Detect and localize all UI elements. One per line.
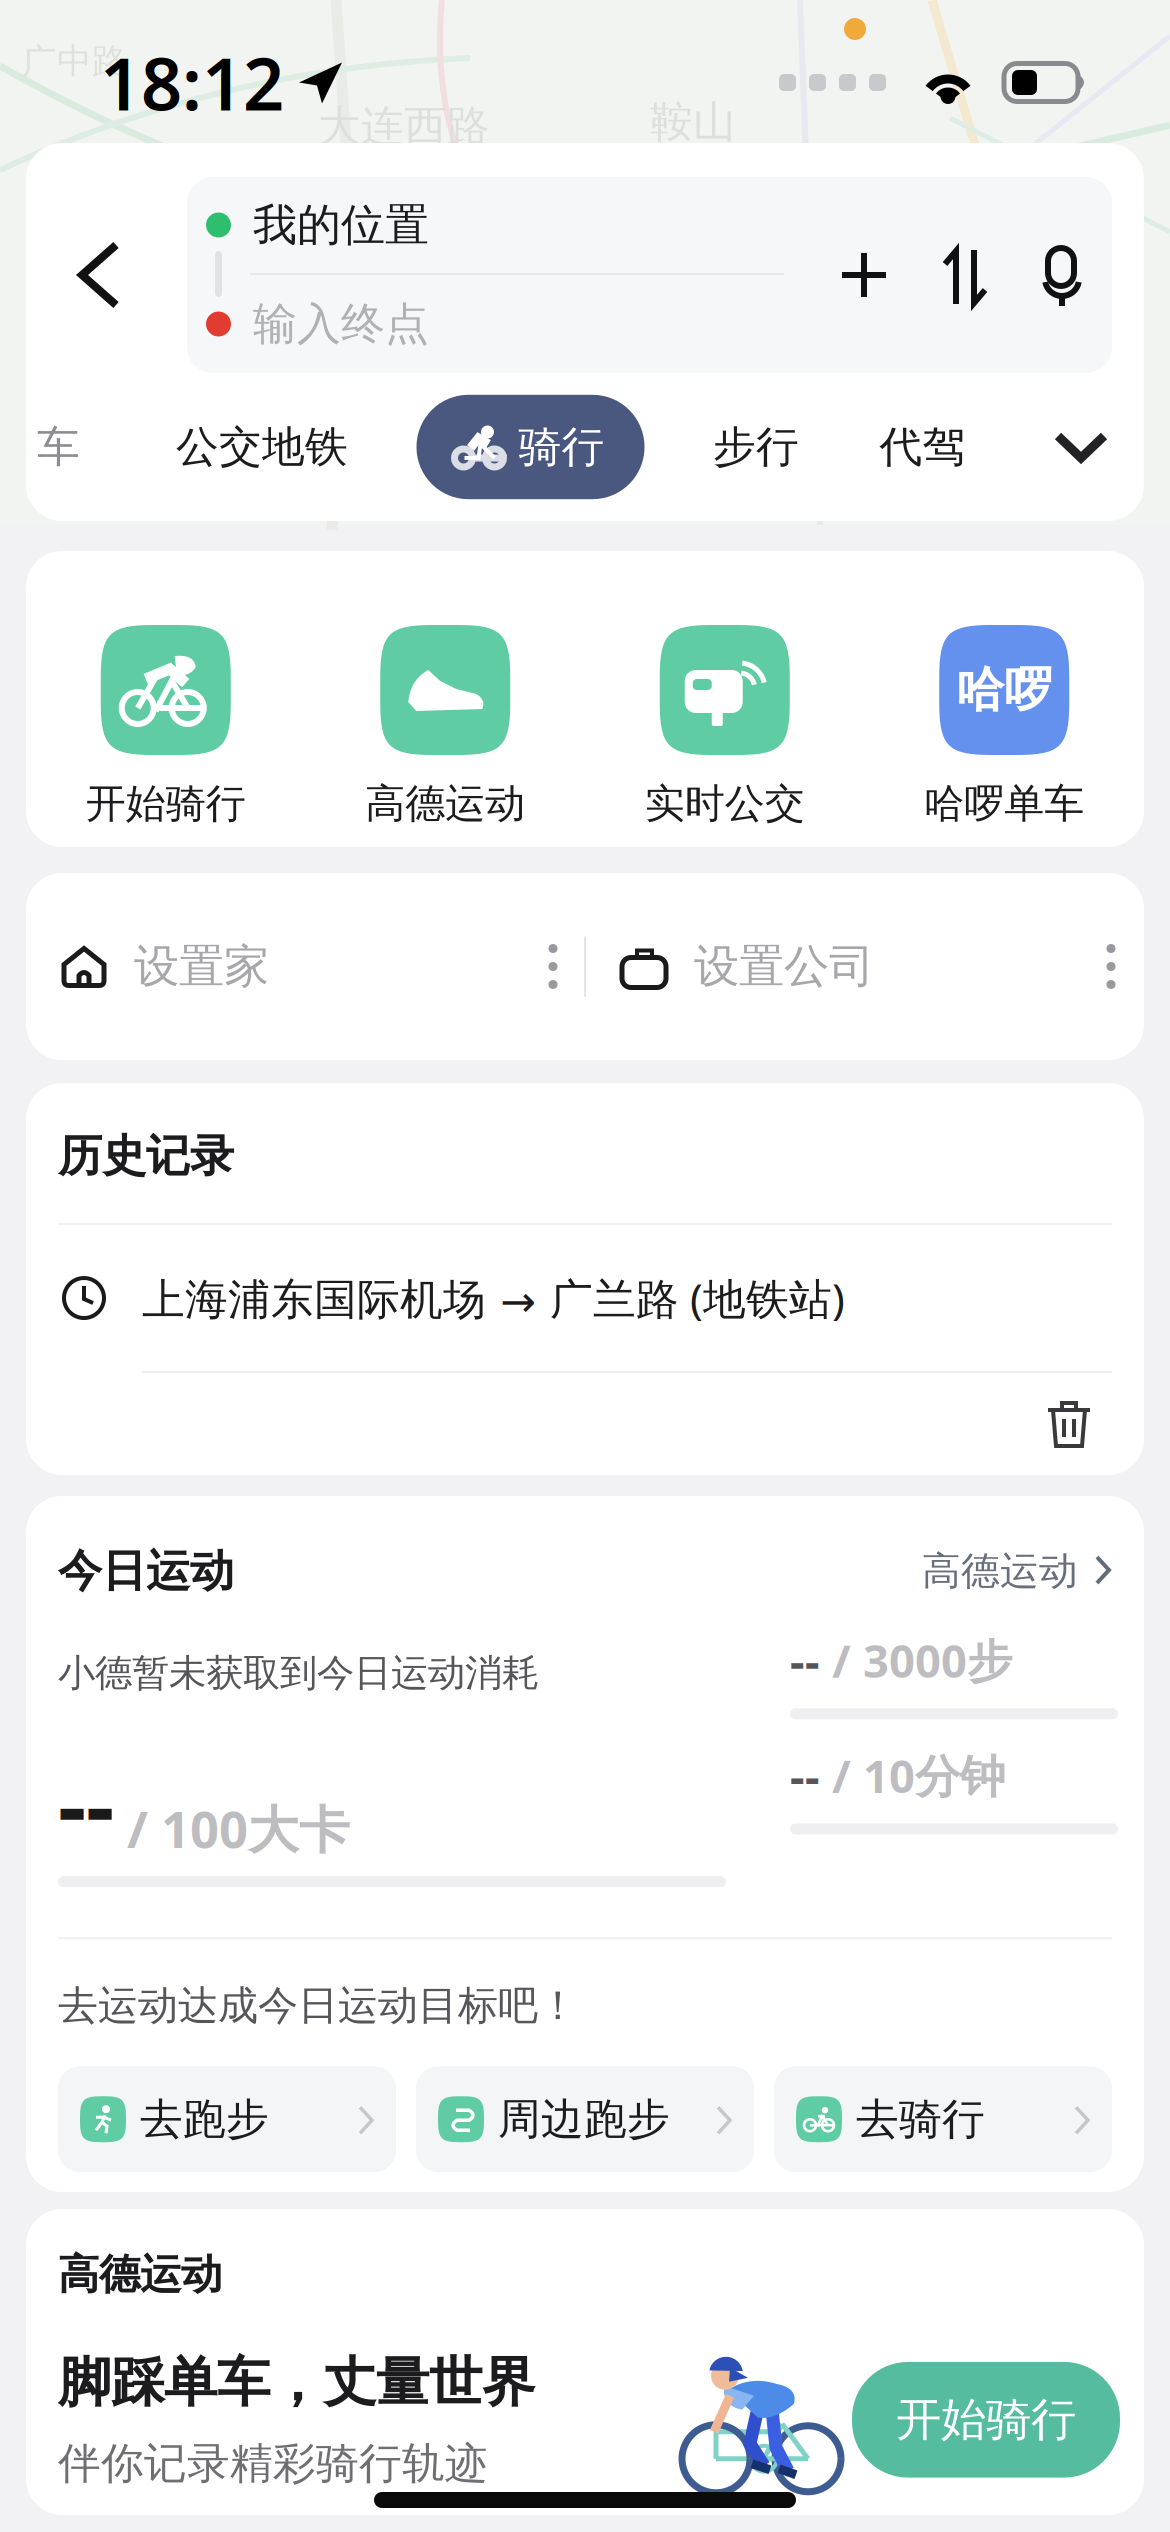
button[interactable]: 开始骑行 xyxy=(26,551,305,847)
staticText: 设置公司 xyxy=(694,939,874,994)
staticText: 去跑步 xyxy=(140,2093,269,2145)
staticText: 去运动达成今日运动目标吧！ xyxy=(58,1981,578,2030)
button[interactable]: 清除历史记录 xyxy=(1020,1373,1118,1475)
button[interactable]: 高德运动 xyxy=(922,1547,1114,1595)
button[interactable]: 骑行 xyxy=(416,395,644,499)
button[interactable]: 实时公交 xyxy=(585,551,864,847)
staticText: 公交地铁 xyxy=(176,421,348,473)
staticText: 历史记录 xyxy=(58,1129,234,1183)
staticText: 输入终点 xyxy=(253,297,429,351)
staticText: -- xyxy=(790,1630,820,1690)
staticText: 高德运动 xyxy=(58,2249,222,2300)
button[interactable]: 语音搜索 xyxy=(1014,178,1112,372)
staticText: 开始骑行 xyxy=(896,2392,1076,2448)
staticText: 哈啰单车 xyxy=(924,779,1084,828)
staticText: / 100大卡 xyxy=(114,1795,350,1862)
staticText: 大连西路 xyxy=(318,100,490,152)
staticText: 伴你记录精彩骑行轨迹 xyxy=(58,2437,488,2490)
staticText: 设置家 xyxy=(134,939,269,994)
button[interactable]: 哈啰 xyxy=(864,551,1144,847)
button[interactable]: 开始骑行 xyxy=(852,2362,1120,2478)
button[interactable]: 周边跑步 xyxy=(416,2066,754,2172)
button[interactable]: 上海浦东国际机场 → 广兰路 (地铁站) xyxy=(26,1225,1144,1371)
staticText: -- xyxy=(58,1745,114,1862)
staticText: 去骑行 xyxy=(856,2093,985,2145)
staticText: 上海浦东国际机场 → 广兰路 (地铁站) xyxy=(142,1270,845,1326)
staticText: 代驾 xyxy=(879,421,965,473)
staticText: / 3000步 xyxy=(820,1630,1012,1690)
button[interactable]: 去骑行 xyxy=(774,2066,1112,2172)
staticText: 脚踩单车，丈量世界 xyxy=(58,2350,535,2415)
staticText: 开始骑行 xyxy=(86,779,246,828)
button[interactable]: 展开更多方式 xyxy=(1034,398,1128,496)
staticText: 广中路 xyxy=(22,40,127,83)
staticText: 实时公交 xyxy=(645,779,805,828)
button[interactable]: 高德运动 xyxy=(305,551,585,847)
staticText: 高德运动 xyxy=(922,1547,1078,1595)
button[interactable]: 设置公司 xyxy=(586,873,1144,1060)
button[interactable]: 添加途经点 xyxy=(814,178,914,372)
button[interactable]: 返回 xyxy=(26,200,187,350)
staticText: 车 xyxy=(37,421,80,473)
staticText: 步行 xyxy=(713,421,799,473)
button[interactable]: 去跑步 xyxy=(58,2066,396,2172)
staticText: 鞍山 xyxy=(650,96,736,148)
staticText: 高德运动 xyxy=(365,779,525,828)
staticText: 骑行 xyxy=(518,421,604,473)
staticText: 18:12 xyxy=(100,35,284,130)
staticText: / 10分钟 xyxy=(820,1745,1005,1805)
button[interactable]: 步行 xyxy=(701,399,811,495)
button[interactable]: 设置家 xyxy=(26,873,584,1060)
button[interactable]: 代驾 xyxy=(867,399,977,495)
button[interactable]: 公交地铁 xyxy=(164,399,360,495)
staticText: 今日运动 xyxy=(58,1544,234,1598)
button[interactable]: 交换起终点 xyxy=(914,178,1014,372)
staticText: 小德暂未获取到今日运动消耗 xyxy=(58,1650,539,1696)
staticText: -- xyxy=(790,1745,820,1805)
staticText: 周边跑步 xyxy=(498,2093,670,2145)
staticText: 哈啰 xyxy=(956,660,1052,719)
staticText: 我的位置 xyxy=(253,198,429,252)
